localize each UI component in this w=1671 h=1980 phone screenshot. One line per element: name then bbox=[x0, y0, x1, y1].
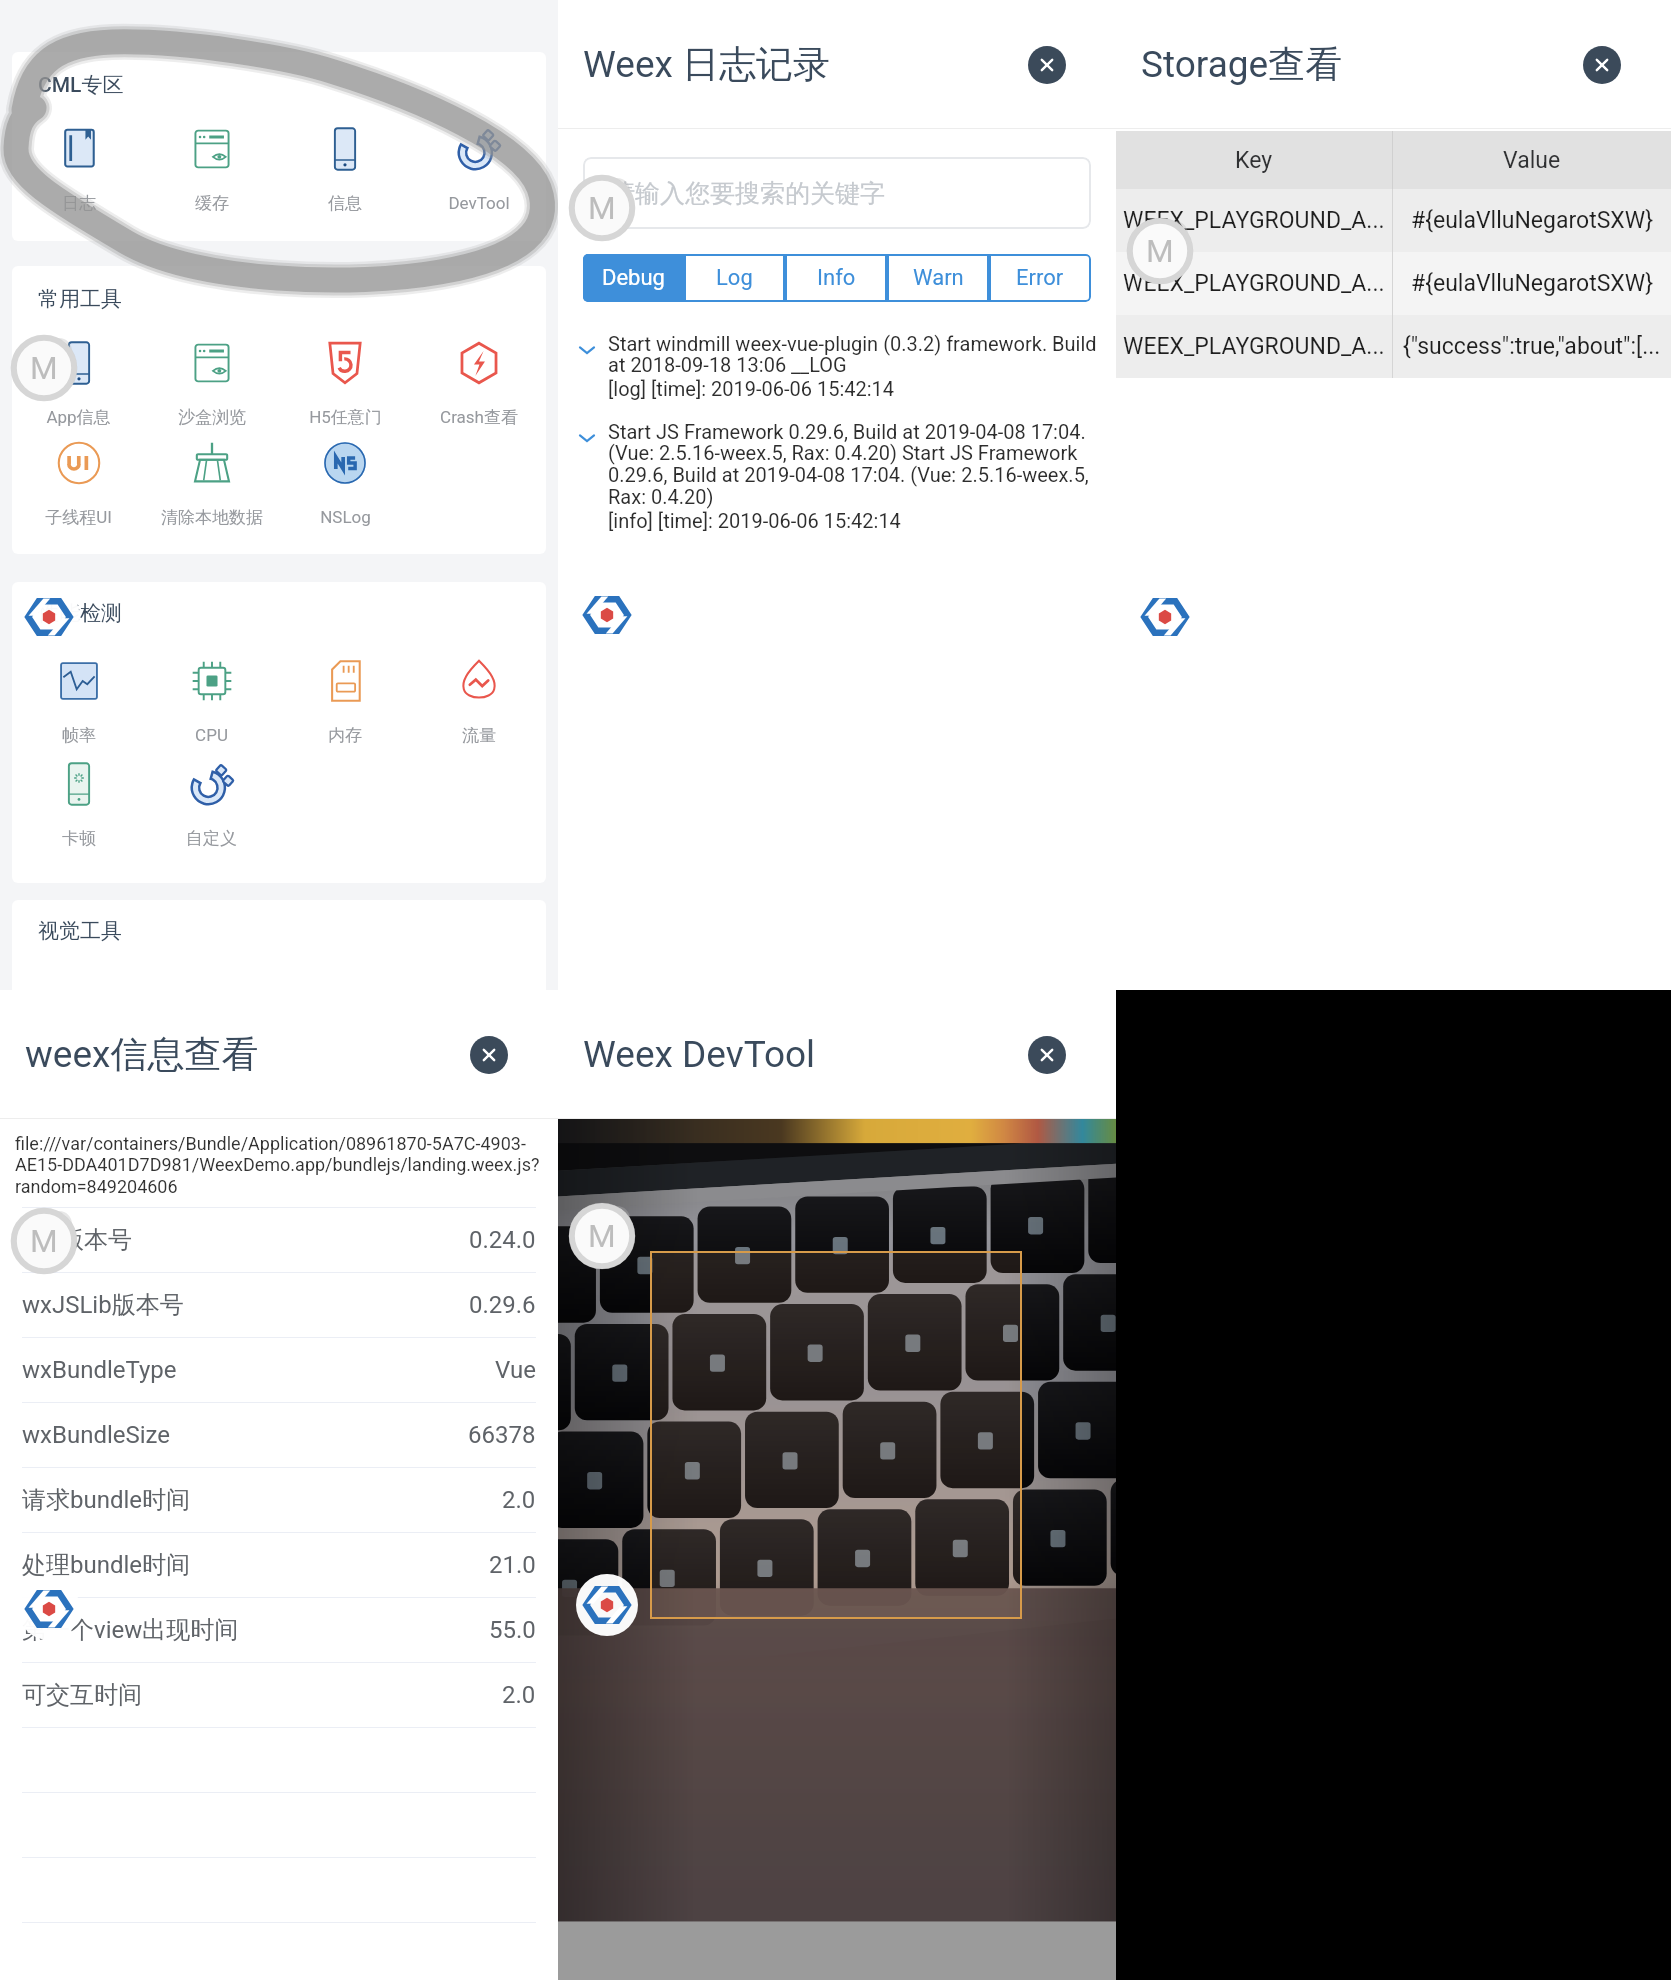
staticText: #{eulaVlluNegarotSXW} bbox=[1411, 270, 1654, 297]
staticText: 第一个view出现时间 bbox=[22, 1615, 239, 1645]
staticText: 性能检测 bbox=[38, 600, 122, 626]
staticText: Value bbox=[1503, 147, 1561, 174]
staticText: wxJSLib版本号 bbox=[22, 1290, 184, 1320]
staticText: 66378 bbox=[468, 1421, 536, 1449]
staticText: 常用工具 bbox=[38, 286, 122, 312]
button[interactable]: Log bbox=[684, 254, 785, 302]
button[interactable]: WEEX_PLAYGROUND_A... bbox=[1116, 252, 1671, 315]
staticText: 日志 bbox=[62, 193, 96, 214]
staticText: Weex 日志记录 bbox=[583, 41, 831, 88]
button[interactable]: 自定义 bbox=[145, 761, 278, 849]
staticText: 视觉工具 bbox=[38, 918, 122, 944]
staticText: sdk版本号 bbox=[22, 1225, 133, 1255]
button[interactable]: 沙盒浏览 bbox=[145, 340, 278, 428]
staticText: Vue bbox=[495, 1356, 536, 1384]
button[interactable]: sdk版本号 bbox=[22, 1208, 536, 1272]
staticText: 处理bundle时间 bbox=[22, 1550, 191, 1580]
staticText: 可交互时间 bbox=[22, 1680, 142, 1710]
button[interactable]: 卡顿 bbox=[12, 761, 145, 849]
staticText: Warn bbox=[913, 265, 964, 291]
button[interactable]: Close bbox=[1028, 46, 1066, 84]
button[interactable]: 缓存 bbox=[145, 126, 278, 214]
staticText: M bbox=[588, 190, 616, 227]
staticText: Start JS Framework 0.29.6, Build at 2019… bbox=[608, 420, 1106, 509]
button[interactable]: Debug bbox=[583, 254, 684, 302]
button[interactable]: wxBundleSize bbox=[22, 1403, 536, 1467]
button[interactable]: 流量 bbox=[412, 658, 546, 746]
staticText: M bbox=[1146, 233, 1174, 270]
button[interactable]: 处理bundle时间 bbox=[22, 1533, 536, 1597]
staticText: 流量 bbox=[462, 725, 496, 746]
button[interactable]: Warn bbox=[887, 254, 989, 302]
button[interactable]: Close bbox=[470, 1036, 508, 1074]
button[interactable]: WEEX_PLAYGROUND_A... bbox=[1116, 315, 1671, 378]
button[interactable]: 内存 bbox=[278, 658, 412, 746]
staticText: 缓存 bbox=[195, 193, 229, 214]
button[interactable]: WEEX_PLAYGROUND_A... bbox=[1116, 189, 1671, 252]
staticText: 自定义 bbox=[186, 828, 237, 849]
staticText: 2.0 bbox=[502, 1486, 536, 1514]
staticText: M bbox=[30, 350, 58, 387]
staticText: H5任意门 bbox=[309, 407, 382, 428]
staticText: 卡顿 bbox=[62, 828, 96, 849]
staticText: CPU bbox=[195, 725, 228, 745]
staticText: 帧率 bbox=[62, 725, 96, 746]
staticText: 0.29.6 bbox=[469, 1291, 536, 1319]
button[interactable]: 日志 bbox=[12, 126, 145, 214]
staticText: Storage查看 bbox=[1141, 41, 1343, 88]
staticText: {"success":true,"about":[... bbox=[1403, 333, 1661, 360]
staticText: App信息 bbox=[46, 407, 111, 428]
staticText: WEEX_PLAYGROUND_A... bbox=[1123, 270, 1385, 297]
staticText: Error bbox=[1016, 265, 1064, 291]
staticText: Weex DevTool bbox=[583, 1033, 816, 1076]
button[interactable]: 第一个view出现时间 bbox=[22, 1598, 536, 1662]
staticText: NSLog bbox=[320, 507, 371, 527]
staticText: [log] [time]: 2019-06-06 15:42:14 bbox=[608, 377, 895, 400]
button[interactable]: Close bbox=[1583, 46, 1621, 84]
staticText: Crash查看 bbox=[440, 407, 518, 428]
button[interactable]: Error bbox=[989, 254, 1091, 302]
staticText: Key bbox=[1235, 147, 1273, 174]
button[interactable]: 信息 bbox=[278, 126, 412, 214]
button[interactable]: 可交互时间 bbox=[22, 1663, 536, 1727]
staticText: 沙盒浏览 bbox=[178, 407, 246, 428]
staticText: 信息 bbox=[328, 193, 362, 214]
staticText: wxBundleSize bbox=[22, 1421, 171, 1449]
staticText: 请输入您要搜索的关键字 bbox=[610, 178, 885, 209]
staticText: file:///var/containers/Bundle/Applicatio… bbox=[15, 1133, 550, 1198]
button[interactable]: NSLog bbox=[278, 440, 412, 527]
button[interactable]: 清除本地数据 bbox=[145, 440, 278, 528]
button[interactable]: CPU bbox=[145, 658, 278, 745]
staticText: Log bbox=[716, 265, 753, 291]
button[interactable]: H5任意门 bbox=[278, 340, 412, 428]
staticText: [info] [time]: 2019-06-06 15:42:14 bbox=[608, 509, 901, 532]
staticText: M bbox=[588, 1218, 616, 1255]
staticText: 清除本地数据 bbox=[161, 507, 263, 528]
button[interactable]: Close bbox=[1028, 1036, 1066, 1074]
button[interactable]: 帧率 bbox=[12, 658, 145, 746]
button[interactable]: wxJSLib版本号 bbox=[22, 1273, 536, 1337]
button[interactable]: wxBundleType bbox=[22, 1338, 536, 1402]
staticText: 0.24.0 bbox=[469, 1226, 536, 1254]
staticText: CML专区 bbox=[38, 72, 124, 98]
staticText: 请求bundle时间 bbox=[22, 1485, 191, 1515]
button[interactable]: App信息 bbox=[12, 340, 145, 428]
staticText: 内存 bbox=[328, 725, 362, 746]
staticText: 子线程UI bbox=[45, 507, 112, 528]
staticText: Debug bbox=[602, 265, 665, 291]
button[interactable]: 请输入您要搜索的关键字 bbox=[583, 157, 1091, 229]
staticText: DevTool bbox=[448, 193, 510, 213]
button[interactable]: 子线程UI bbox=[12, 440, 145, 528]
button[interactable]: Info bbox=[785, 254, 887, 302]
staticText: Info bbox=[817, 265, 856, 291]
button[interactable]: 请求bundle时间 bbox=[22, 1468, 536, 1532]
button[interactable]: Crash查看 bbox=[412, 340, 546, 428]
staticText: WEEX_PLAYGROUND_A... bbox=[1123, 207, 1385, 234]
button[interactable]: DevTool bbox=[412, 126, 546, 213]
staticText: 21.0 bbox=[489, 1551, 536, 1579]
staticText: 55.0 bbox=[489, 1616, 536, 1644]
staticText: Start windmill weex-vue-plugin (0.3.2) f… bbox=[608, 332, 1106, 377]
